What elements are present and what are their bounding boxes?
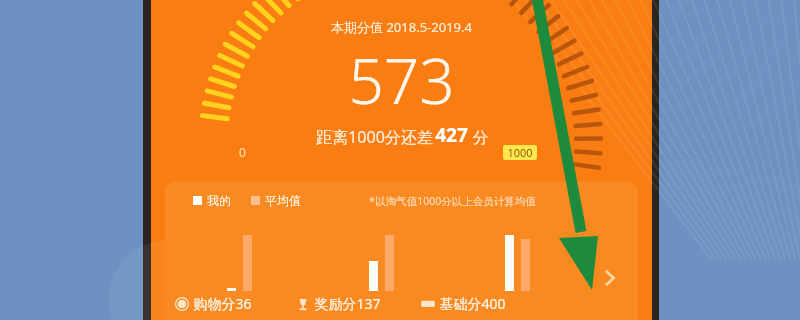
staticText: 平均值	[265, 193, 301, 208]
button[interactable]: 奖励分137	[296, 294, 381, 313]
staticText: 我的	[207, 193, 231, 208]
staticText: 573	[348, 38, 455, 122]
button[interactable]: 更多	[597, 265, 623, 291]
staticText: 0	[239, 144, 246, 160]
button[interactable]: 基础分400	[421, 294, 506, 313]
staticText: 分	[468, 126, 489, 148]
staticText: 购物分36	[193, 294, 252, 313]
button[interactable]: 我的	[165, 181, 638, 320]
staticText: 427	[435, 122, 468, 148]
staticText: 本期分值 2018.5-2019.4	[331, 18, 472, 36]
staticText: 奖励分137	[314, 294, 381, 313]
staticText: 1000	[507, 145, 533, 160]
staticText: *以淘气值1000分以上会员计算均值	[369, 194, 536, 208]
staticText: 基础分400	[439, 294, 506, 313]
staticText: 距离1000分还差	[314, 126, 435, 148]
button[interactable]: 购物分36	[175, 294, 252, 313]
